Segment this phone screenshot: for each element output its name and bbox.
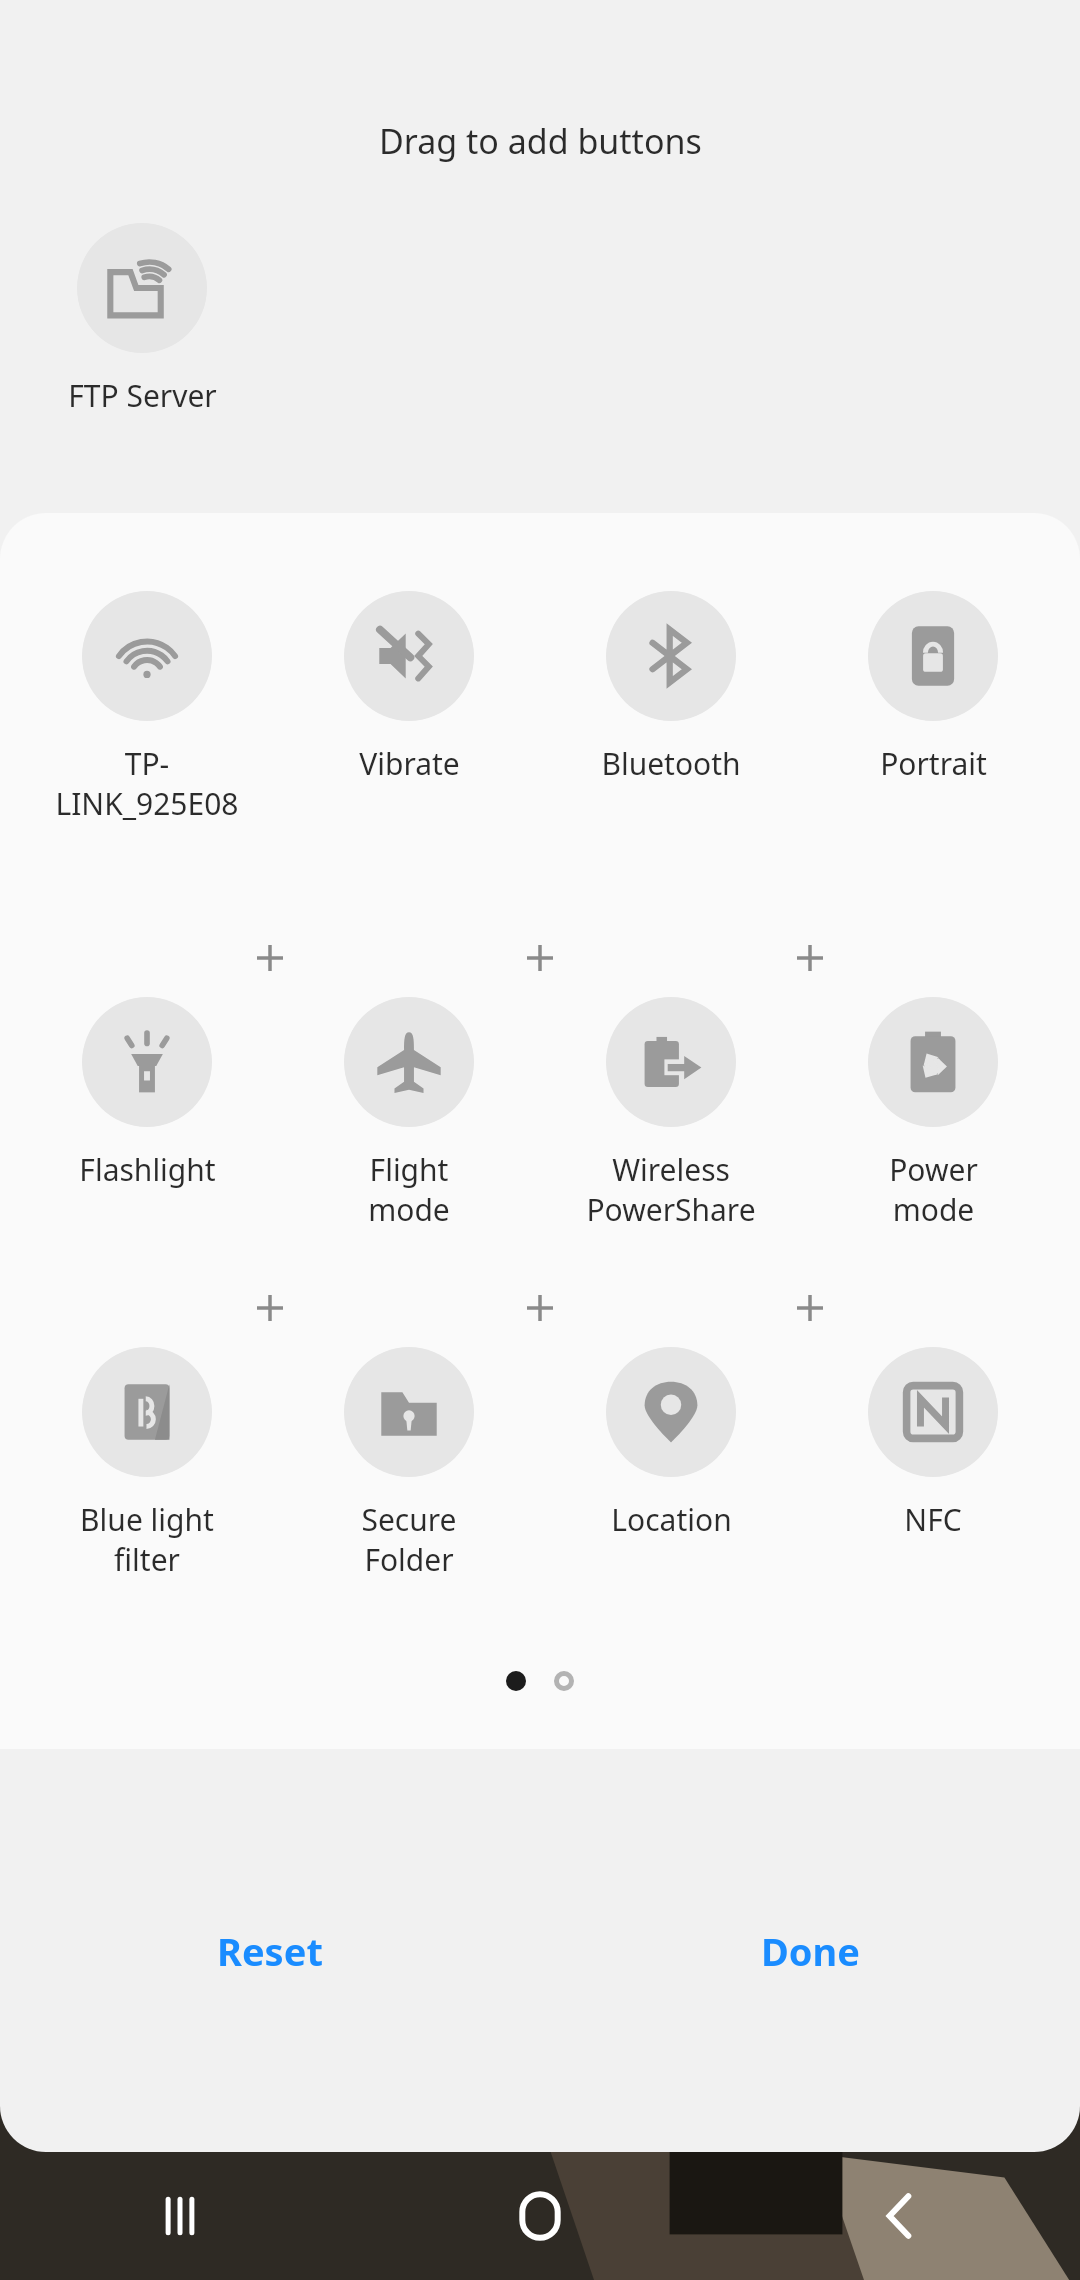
- button[interactable]: FTP Server: [51, 223, 233, 416]
- staticText: Reset: [217, 1925, 323, 1977]
- button[interactable]: Flight mode: [294, 997, 524, 1230]
- button[interactable]: Recents: [0, 2152, 360, 2280]
- button[interactable]: NFC: [818, 1347, 1048, 1540]
- button[interactable]: Vibrate: [294, 591, 524, 784]
- staticText: Power mode: [889, 1149, 978, 1230]
- button[interactable]: Reset: [0, 1749, 540, 2152]
- button[interactable]: Bluetooth: [556, 591, 786, 784]
- button[interactable]: Flashlight: [32, 997, 262, 1190]
- button[interactable]: Back: [720, 2152, 1080, 2280]
- staticText: Vibrate: [359, 743, 460, 784]
- button[interactable]: Home: [360, 2152, 720, 2280]
- staticText: Portrait: [880, 743, 987, 784]
- staticText: Blue light filter: [80, 1499, 214, 1580]
- button[interactable]: Portrait: [818, 591, 1048, 784]
- button[interactable]: TP- LINK_925E08: [32, 591, 262, 824]
- button[interactable]: Location: [556, 1347, 786, 1540]
- button[interactable]: Done: [540, 1749, 1080, 2152]
- button[interactable]: Secure Folder: [294, 1347, 524, 1580]
- staticText: NFC: [904, 1499, 962, 1540]
- staticText: FTP Server: [68, 375, 217, 416]
- staticText: Secure Folder: [361, 1499, 457, 1580]
- staticText: Location: [611, 1499, 732, 1540]
- staticText: Bluetooth: [601, 743, 741, 784]
- staticText: Drag to add buttons: [379, 118, 702, 164]
- button[interactable]: Power mode: [818, 997, 1048, 1230]
- staticText: Wireless PowerShare: [586, 1149, 756, 1230]
- staticText: Done: [761, 1925, 860, 1977]
- staticText: TP- LINK_925E08: [55, 743, 239, 824]
- staticText: Flashlight: [79, 1149, 216, 1190]
- button[interactable]: Wireless PowerShare: [556, 997, 786, 1230]
- staticText: Flight mode: [368, 1149, 450, 1230]
- button[interactable]: Blue light filter: [32, 1347, 262, 1580]
